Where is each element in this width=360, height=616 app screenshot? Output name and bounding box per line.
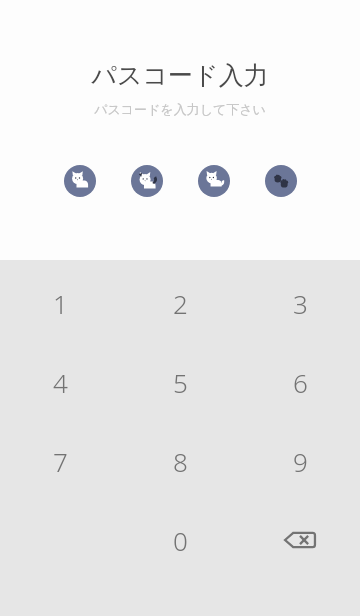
- button[interactable]: Delete: [240, 519, 360, 561]
- button[interactable]: 9: [240, 440, 360, 482]
- button[interactable]: 7: [0, 440, 120, 482]
- button[interactable]: 8: [120, 440, 240, 482]
- staticText: 0: [173, 523, 188, 558]
- staticText: 8: [173, 444, 188, 479]
- staticText: 1: [53, 286, 68, 321]
- staticText: 3: [293, 286, 308, 321]
- staticText: パスコード入力: [91, 60, 269, 91]
- button[interactable]: 0: [120, 519, 240, 561]
- button[interactable]: Passcode digit 2: [131, 165, 163, 197]
- button[interactable]: 6: [240, 361, 360, 403]
- button[interactable]: 1: [0, 282, 120, 324]
- staticText: パスコードを入力して下さい: [94, 101, 266, 117]
- staticText: 2: [173, 286, 188, 321]
- staticText: 6: [293, 365, 308, 400]
- button[interactable]: 5: [120, 361, 240, 403]
- staticText: 9: [293, 444, 308, 479]
- staticText: 7: [53, 444, 68, 479]
- button[interactable]: 4: [0, 361, 120, 403]
- button[interactable]: 2: [120, 282, 240, 324]
- button[interactable]: Passcode digit 3: [198, 165, 230, 197]
- button[interactable]: Passcode digit 1: [64, 165, 96, 197]
- staticText: 5: [173, 365, 188, 400]
- staticText: 4: [53, 365, 68, 400]
- button[interactable]: Passcode digit 4: [265, 165, 297, 197]
- button[interactable]: 3: [240, 282, 360, 324]
